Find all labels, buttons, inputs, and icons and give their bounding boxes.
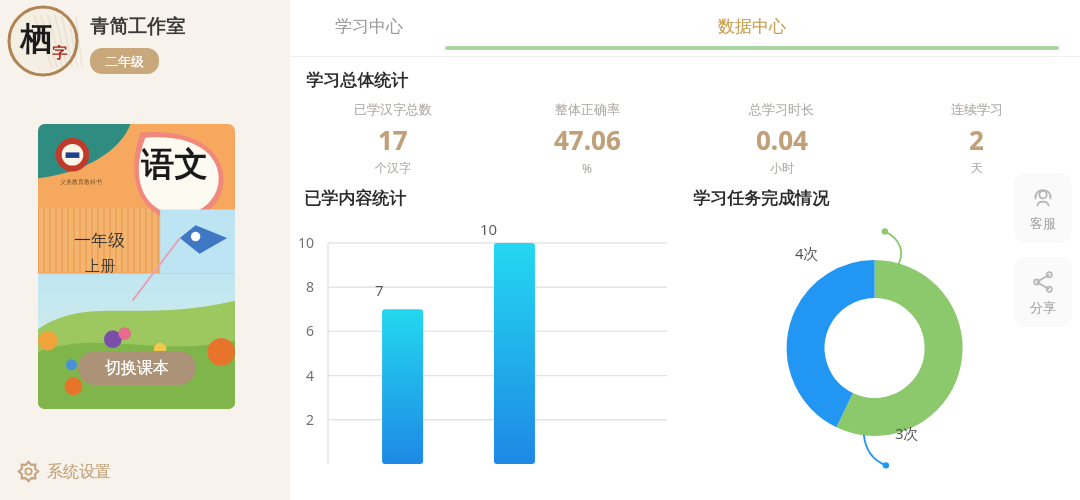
button[interactable]: Customer service (1014, 173, 1072, 243)
staticText: 4次 (795, 243, 819, 263)
button[interactable]: 系统设置 (12, 455, 117, 488)
button[interactable]: 语文 (38, 124, 235, 409)
button[interactable]: 数据中心 (424, 0, 1080, 50)
staticText: 0.04 (756, 122, 808, 157)
staticText: 切换课本 (105, 358, 169, 378)
staticText: 连续学习 (951, 101, 1003, 117)
staticText: 47.06 (554, 122, 621, 157)
staticText: 学习中心 (335, 16, 403, 37)
staticText: 青简工作室 (90, 15, 185, 39)
staticText: 整体正确率 (555, 101, 620, 117)
staticText: 8 (306, 277, 315, 296)
staticText: 10 (298, 233, 315, 252)
staticText: 天 (971, 160, 983, 175)
staticText: 总学习时长 (749, 101, 814, 117)
staticText: 栖 (20, 19, 52, 59)
staticText: 7 (375, 280, 384, 300)
staticText: 已学内容统计 (304, 188, 406, 209)
staticText: 6 (306, 321, 315, 340)
button[interactable]: 切换课本 (78, 351, 196, 385)
staticText: % (582, 160, 592, 176)
staticText: 学习任务完成情况 (693, 188, 829, 209)
staticText: 2 (969, 122, 984, 157)
staticText: 系统设置 (47, 462, 111, 482)
staticText: 10 (480, 219, 498, 239)
staticText: 客服 (1030, 215, 1056, 231)
staticText: 二年级 (105, 53, 144, 69)
button[interactable]: 学习中心 (314, 0, 424, 46)
staticText: 3次 (895, 423, 919, 443)
staticText: 一年级 (74, 230, 125, 251)
staticText: 上册 (85, 257, 115, 276)
staticText: 字 (52, 44, 67, 63)
button[interactable]: Share (1014, 257, 1072, 327)
staticText: 义务教育教科书 (60, 178, 102, 186)
staticText: 4 (306, 366, 315, 385)
staticText: 已学汉字总数 (354, 101, 432, 117)
staticText: 小时 (770, 160, 794, 175)
staticText: 分享 (1030, 299, 1056, 315)
staticText: 语文 (141, 144, 207, 186)
staticText: 2 (306, 410, 315, 429)
button[interactable]: 二年级 (90, 48, 159, 74)
staticText: 个汉字 (375, 160, 411, 175)
staticText: 学习总体统计 (306, 70, 408, 91)
staticText: 17 (378, 122, 408, 157)
staticText: 数据中心 (718, 16, 786, 37)
